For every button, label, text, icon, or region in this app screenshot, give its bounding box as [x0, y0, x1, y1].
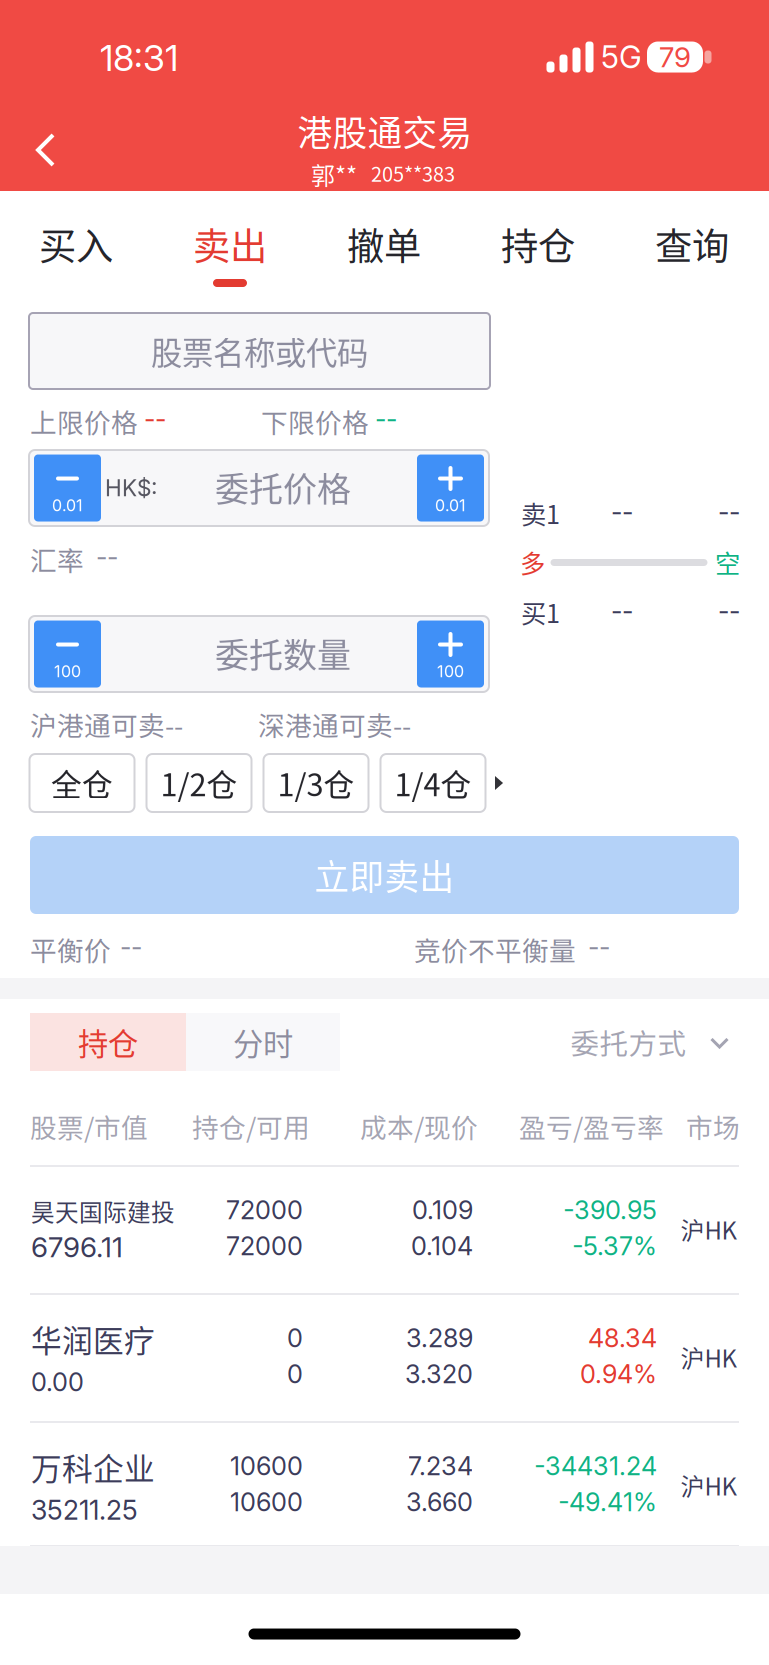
- staticText: --: [588, 932, 610, 962]
- staticText: 沪港通可卖--: [30, 705, 183, 743]
- staticText: 撤单: [347, 217, 421, 271]
- staticText: 0: [287, 1323, 303, 1353]
- staticText: 卖1: [521, 495, 560, 531]
- button[interactable]: Increase 委托数量: [417, 620, 484, 687]
- staticText: 委托数量: [215, 628, 351, 678]
- staticText: 竞价不平衡量: [414, 930, 576, 968]
- staticText: --: [718, 596, 740, 626]
- button[interactable]: 1/2仓: [146, 754, 251, 812]
- staticText: 3.320: [405, 1359, 473, 1389]
- staticText: 持仓: [78, 1020, 138, 1064]
- button[interactable]: 股票名称或代码: [29, 313, 490, 389]
- staticText: 汇率: [30, 540, 84, 578]
- button[interactable]: 买入: [0, 191, 152, 299]
- staticText: --: [120, 932, 142, 962]
- staticText: 100: [54, 662, 81, 681]
- staticText: 市场: [686, 1107, 740, 1145]
- staticText: 全仓: [51, 761, 113, 805]
- staticText: 0: [287, 1359, 303, 1389]
- staticText: 立即卖出: [314, 850, 454, 900]
- staticText: 1/4仓: [394, 761, 471, 805]
- staticText: -34431.24: [534, 1451, 657, 1481]
- staticText: --: [96, 542, 118, 572]
- staticText: 48.34: [588, 1323, 657, 1353]
- button[interactable]: 1/3仓: [263, 754, 368, 812]
- staticText: 委托方式: [570, 1021, 686, 1063]
- staticText: --: [718, 497, 740, 527]
- staticText: 沪HK: [680, 1468, 737, 1502]
- staticText: 下限价格: [261, 402, 369, 440]
- staticText: 盈亏/盈亏率: [519, 1107, 664, 1145]
- staticText: 持仓/可用: [192, 1107, 310, 1145]
- staticText: 空: [715, 544, 740, 580]
- staticText: 0.94%: [580, 1359, 657, 1389]
- staticText: 79: [659, 40, 691, 74]
- staticText: 买1: [521, 594, 560, 630]
- staticText: 昊天国际建投: [31, 1194, 175, 1228]
- staticText: HK$:: [105, 474, 157, 502]
- staticText: 股票名称或代码: [151, 328, 368, 374]
- staticText: 委托价格: [215, 462, 351, 512]
- button[interactable]: 卖出: [153, 191, 306, 299]
- button[interactable]: 撤单: [307, 191, 460, 299]
- staticText: -5.37%: [572, 1231, 657, 1261]
- staticText: 持仓: [501, 217, 575, 271]
- button[interactable]: 立即卖出: [30, 836, 739, 914]
- button[interactable]: Decrease 委托价格: [34, 454, 101, 521]
- button[interactable]: 委托方式: [571, 1012, 751, 1072]
- staticText: 6796.11: [31, 1230, 123, 1264]
- staticText: 3.660: [406, 1487, 473, 1517]
- button[interactable]: 分时: [186, 1013, 340, 1071]
- staticText: 1/2仓: [160, 761, 237, 805]
- staticText: 上限价格: [30, 402, 138, 440]
- button[interactable]: Home: [248, 1628, 520, 1639]
- staticText: 0.01: [435, 496, 466, 515]
- staticText: 35211.25: [31, 1494, 138, 1526]
- staticText: -390.95: [563, 1195, 657, 1225]
- staticText: 7.234: [408, 1451, 473, 1481]
- staticText: 10600: [230, 1487, 303, 1517]
- staticText: 10600: [230, 1451, 303, 1481]
- button[interactable]: 持仓: [30, 1013, 186, 1071]
- button[interactable]: 昊天国际建投: [0, 1167, 769, 1293]
- button[interactable]: 持仓: [461, 191, 614, 299]
- staticText: 华润医疗: [31, 1317, 155, 1361]
- staticText: 港股通交易: [297, 106, 472, 156]
- staticText: 查询: [655, 217, 729, 271]
- staticText: 买入: [39, 217, 113, 271]
- staticText: 100: [437, 662, 464, 681]
- button[interactable]: 全仓: [29, 754, 134, 812]
- button[interactable]: Back: [6, 110, 86, 190]
- staticText: -49.41%: [558, 1487, 657, 1517]
- staticText: 深港通可卖--: [258, 705, 411, 743]
- button[interactable]: Decrease 委托数量: [34, 620, 101, 687]
- button[interactable]: Increase 委托价格: [417, 454, 484, 521]
- staticText: --: [144, 404, 166, 434]
- staticText: 0.00: [31, 1367, 84, 1397]
- staticText: 股票/市值: [30, 1107, 148, 1145]
- staticText: 沪HK: [680, 1340, 737, 1374]
- staticText: 72000: [226, 1195, 303, 1225]
- staticText: 5G: [601, 38, 642, 75]
- staticText: 沪HK: [680, 1212, 737, 1246]
- staticText: 0.01: [52, 496, 83, 515]
- staticText: --: [611, 596, 633, 626]
- staticText: 205**383: [371, 158, 455, 187]
- staticText: 0.109: [412, 1195, 473, 1225]
- staticText: 平衡价: [30, 930, 111, 968]
- staticText: 3.289: [406, 1323, 473, 1353]
- staticText: 成本/现价: [360, 1107, 478, 1145]
- button[interactable]: 查询: [615, 191, 768, 299]
- staticText: --: [611, 497, 633, 527]
- staticText: 72000: [226, 1231, 303, 1261]
- staticText: 郭**: [311, 157, 357, 191]
- staticText: 0.104: [411, 1231, 473, 1261]
- staticText: 多: [520, 544, 545, 580]
- button[interactable]: 华润医疗: [0, 1295, 769, 1421]
- button[interactable]: 1/4仓: [380, 754, 485, 812]
- button[interactable]: 万科企业: [0, 1423, 769, 1549]
- staticText: 分时: [233, 1020, 293, 1064]
- staticText: --: [375, 404, 397, 434]
- staticText: 18:31: [100, 36, 178, 80]
- staticText: 1/3仓: [277, 761, 354, 805]
